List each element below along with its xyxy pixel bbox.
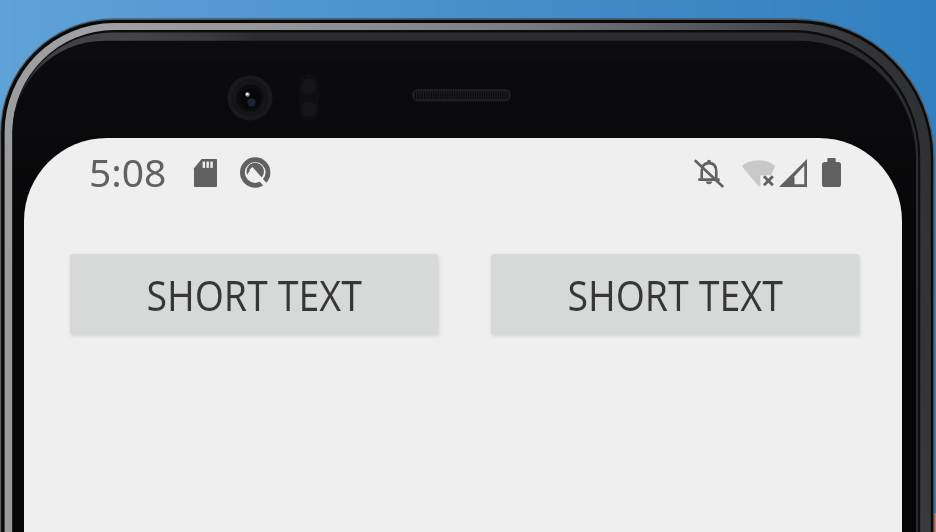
staticText: SHORT TEXT <box>146 267 362 323</box>
button[interactable]: SHORT TEXT <box>491 254 859 335</box>
staticText: SHORT TEXT <box>567 267 783 323</box>
button[interactable]: SHORT TEXT <box>70 254 438 335</box>
staticText: 5:08 <box>89 145 167 198</box>
